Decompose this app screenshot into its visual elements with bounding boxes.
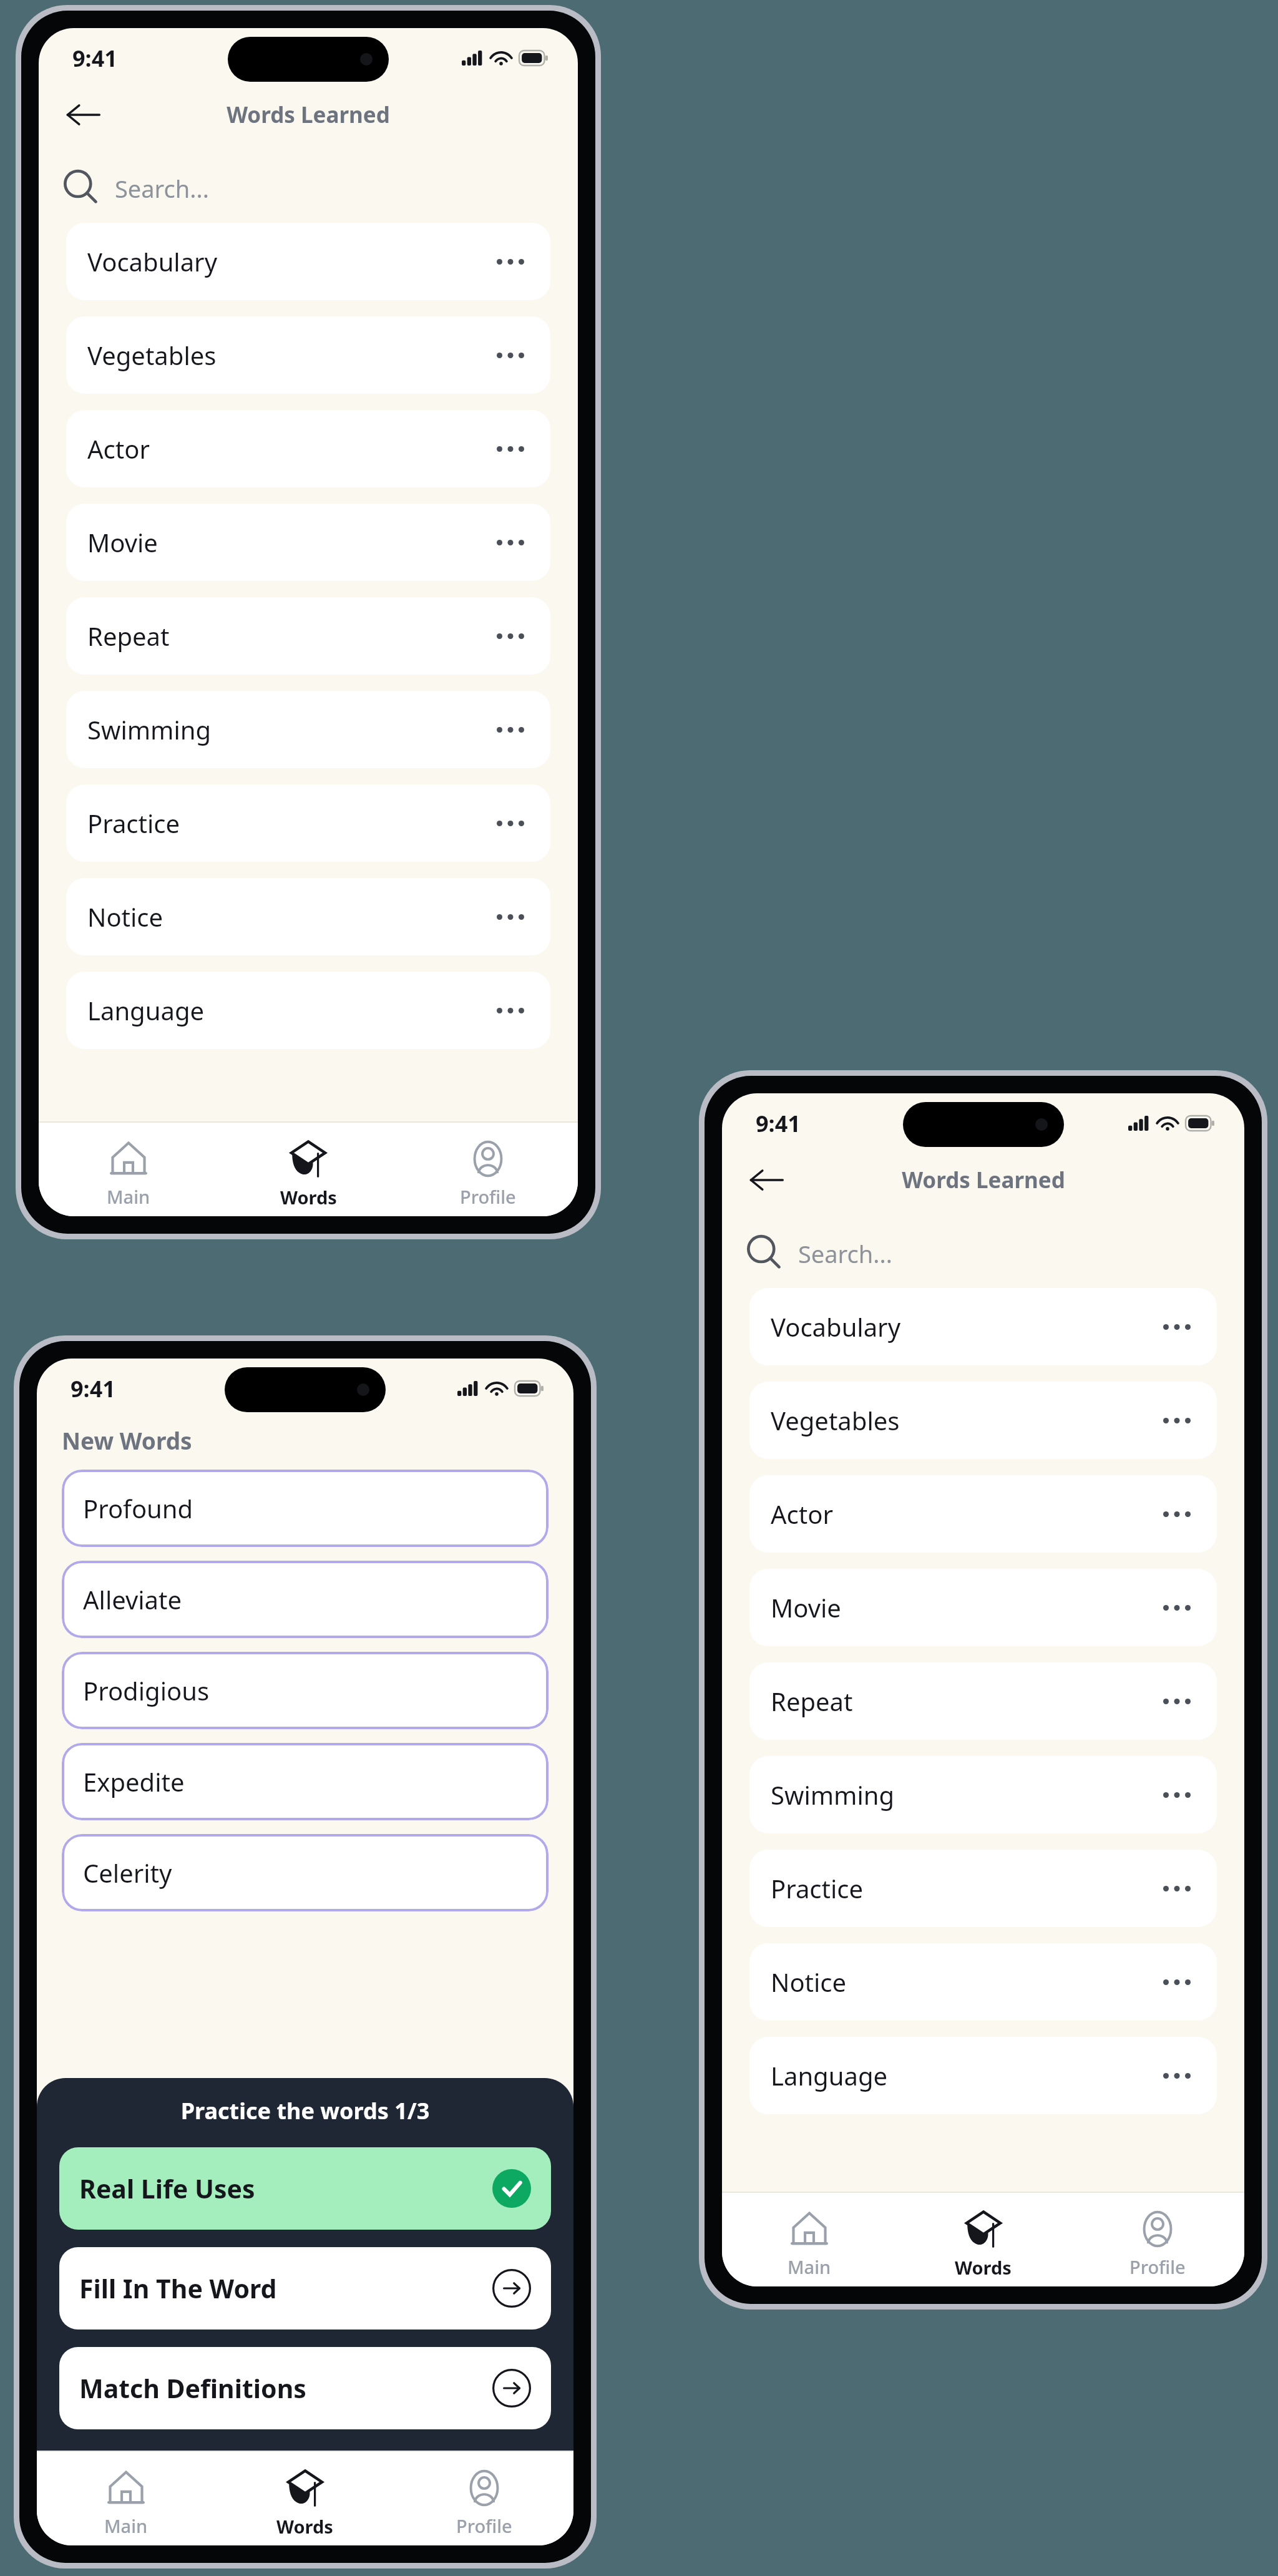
button[interactable]: Back [743, 1157, 789, 1203]
button[interactable]: Swimming [749, 1756, 1217, 1833]
button[interactable]: Real Life Uses [59, 2147, 551, 2230]
staticText: New Words [62, 1425, 192, 1456]
staticText: Search... [798, 1237, 892, 1270]
button[interactable]: More options [1158, 2061, 1196, 2091]
staticText: Notice [771, 1965, 1158, 1999]
staticText: Language [87, 993, 492, 1027]
button[interactable]: Words [218, 1123, 398, 1216]
button[interactable]: Search... [746, 1234, 1244, 1273]
button[interactable]: Profile [1070, 2193, 1244, 2286]
button[interactable]: Words [896, 2193, 1070, 2286]
staticText: Alleviate [83, 1583, 182, 1616]
staticText: Vocabulary [771, 1310, 1158, 1344]
button[interactable]: Repeat [749, 1662, 1217, 1740]
button[interactable]: More options [492, 902, 529, 932]
button[interactable]: More options [492, 340, 529, 370]
staticText: Words Learned [227, 100, 390, 130]
button[interactable]: Vocabulary [66, 223, 550, 300]
staticText: Expedite [83, 1765, 185, 1798]
staticText: Fill In The Word [79, 2271, 492, 2306]
staticText: Words Learned [902, 1165, 1065, 1195]
button[interactable]: Back [60, 92, 106, 138]
staticText: Words [280, 1185, 337, 1209]
staticText: Prodigious [83, 1674, 210, 1707]
staticText: Search... [115, 172, 209, 205]
button[interactable]: Main [39, 1123, 218, 1216]
staticText: Match Definitions [79, 2371, 492, 2406]
button[interactable]: More options [492, 995, 529, 1025]
button[interactable]: Movie [66, 504, 550, 581]
staticText: Main [107, 1184, 150, 1209]
staticText: Repeat [771, 1684, 1158, 1718]
button[interactable]: Notice [749, 1943, 1217, 2021]
staticText: Actor [771, 1497, 1158, 1531]
button[interactable]: Vocabulary [749, 1288, 1217, 1365]
staticText: Profound [83, 1491, 193, 1525]
button[interactable]: Profile [394, 2452, 573, 2545]
staticText: Actor [87, 432, 492, 466]
button[interactable]: Words [215, 2452, 394, 2545]
button[interactable]: Practice [749, 1850, 1217, 1927]
staticText: Swimming [771, 1778, 1158, 1812]
staticText: Language [771, 2059, 1158, 2092]
button[interactable]: More options [1158, 1405, 1196, 1435]
staticText: Vegetables [87, 338, 492, 372]
button[interactable]: More options [1158, 1967, 1196, 1997]
button[interactable]: More options [1158, 1780, 1196, 1810]
staticText: Profile [1129, 2255, 1186, 2279]
button[interactable]: Main [722, 2193, 896, 2286]
staticText: 9:41 [72, 43, 117, 74]
button[interactable]: Repeat [66, 597, 550, 675]
button[interactable]: Search... [62, 169, 578, 208]
staticText: Practice [771, 1871, 1158, 1905]
button[interactable]: More options [1158, 1499, 1196, 1529]
staticText: Main [104, 2514, 148, 2538]
button[interactable]: Vegetables [66, 316, 550, 394]
staticText: Movie [771, 1591, 1158, 1624]
button[interactable]: Movie [749, 1569, 1217, 1646]
button[interactable]: More options [492, 434, 529, 464]
button[interactable]: Vegetables [749, 1382, 1217, 1459]
staticText: Movie [87, 525, 492, 559]
button[interactable]: Profound [62, 1470, 549, 1547]
button[interactable]: More options [1158, 1593, 1196, 1622]
button[interactable]: More options [1158, 1312, 1196, 1342]
button[interactable]: Language [749, 2037, 1217, 2114]
staticText: Repeat [87, 619, 492, 653]
button[interactable]: Match Definitions [59, 2347, 551, 2429]
button[interactable]: More options [1158, 1873, 1196, 1903]
staticText: Vegetables [771, 1403, 1158, 1437]
button[interactable]: More options [492, 715, 529, 744]
button[interactable]: Expedite [62, 1743, 549, 1820]
button[interactable]: More options [492, 808, 529, 838]
staticText: Main [788, 2255, 831, 2279]
button[interactable]: More options [492, 527, 529, 557]
button[interactable]: Main [37, 2452, 215, 2545]
staticText: 9:41 [756, 1108, 801, 1139]
button[interactable]: Profile [398, 1123, 578, 1216]
button[interactable]: More options [1158, 1686, 1196, 1716]
button[interactable]: Actor [66, 410, 550, 487]
button[interactable]: More options [492, 246, 529, 276]
button[interactable]: Prodigious [62, 1652, 549, 1729]
staticText: Practice [87, 806, 492, 840]
staticText: Profile [460, 1184, 516, 1209]
staticText: Swimming [87, 713, 492, 746]
button[interactable]: Fill In The Word [59, 2247, 551, 2330]
staticText: Celerity [83, 1856, 172, 1890]
staticText: Vocabulary [87, 245, 492, 278]
button[interactable]: Actor [749, 1475, 1217, 1553]
button[interactable]: More options [492, 621, 529, 651]
button[interactable]: Notice [66, 878, 550, 955]
button[interactable]: Language [66, 972, 550, 1049]
staticText: Words [955, 2255, 1012, 2280]
staticText: Real Life Uses [79, 2171, 492, 2206]
staticText: Words [276, 2514, 333, 2539]
button[interactable]: Celerity [62, 1834, 549, 1911]
staticText: Practice the words 1/3 [59, 2095, 551, 2126]
button[interactable]: Practice [66, 784, 550, 862]
button[interactable]: Alleviate [62, 1561, 549, 1638]
staticText: Profile [456, 2514, 512, 2538]
staticText: 9:41 [71, 1373, 115, 1404]
button[interactable]: Swimming [66, 691, 550, 768]
